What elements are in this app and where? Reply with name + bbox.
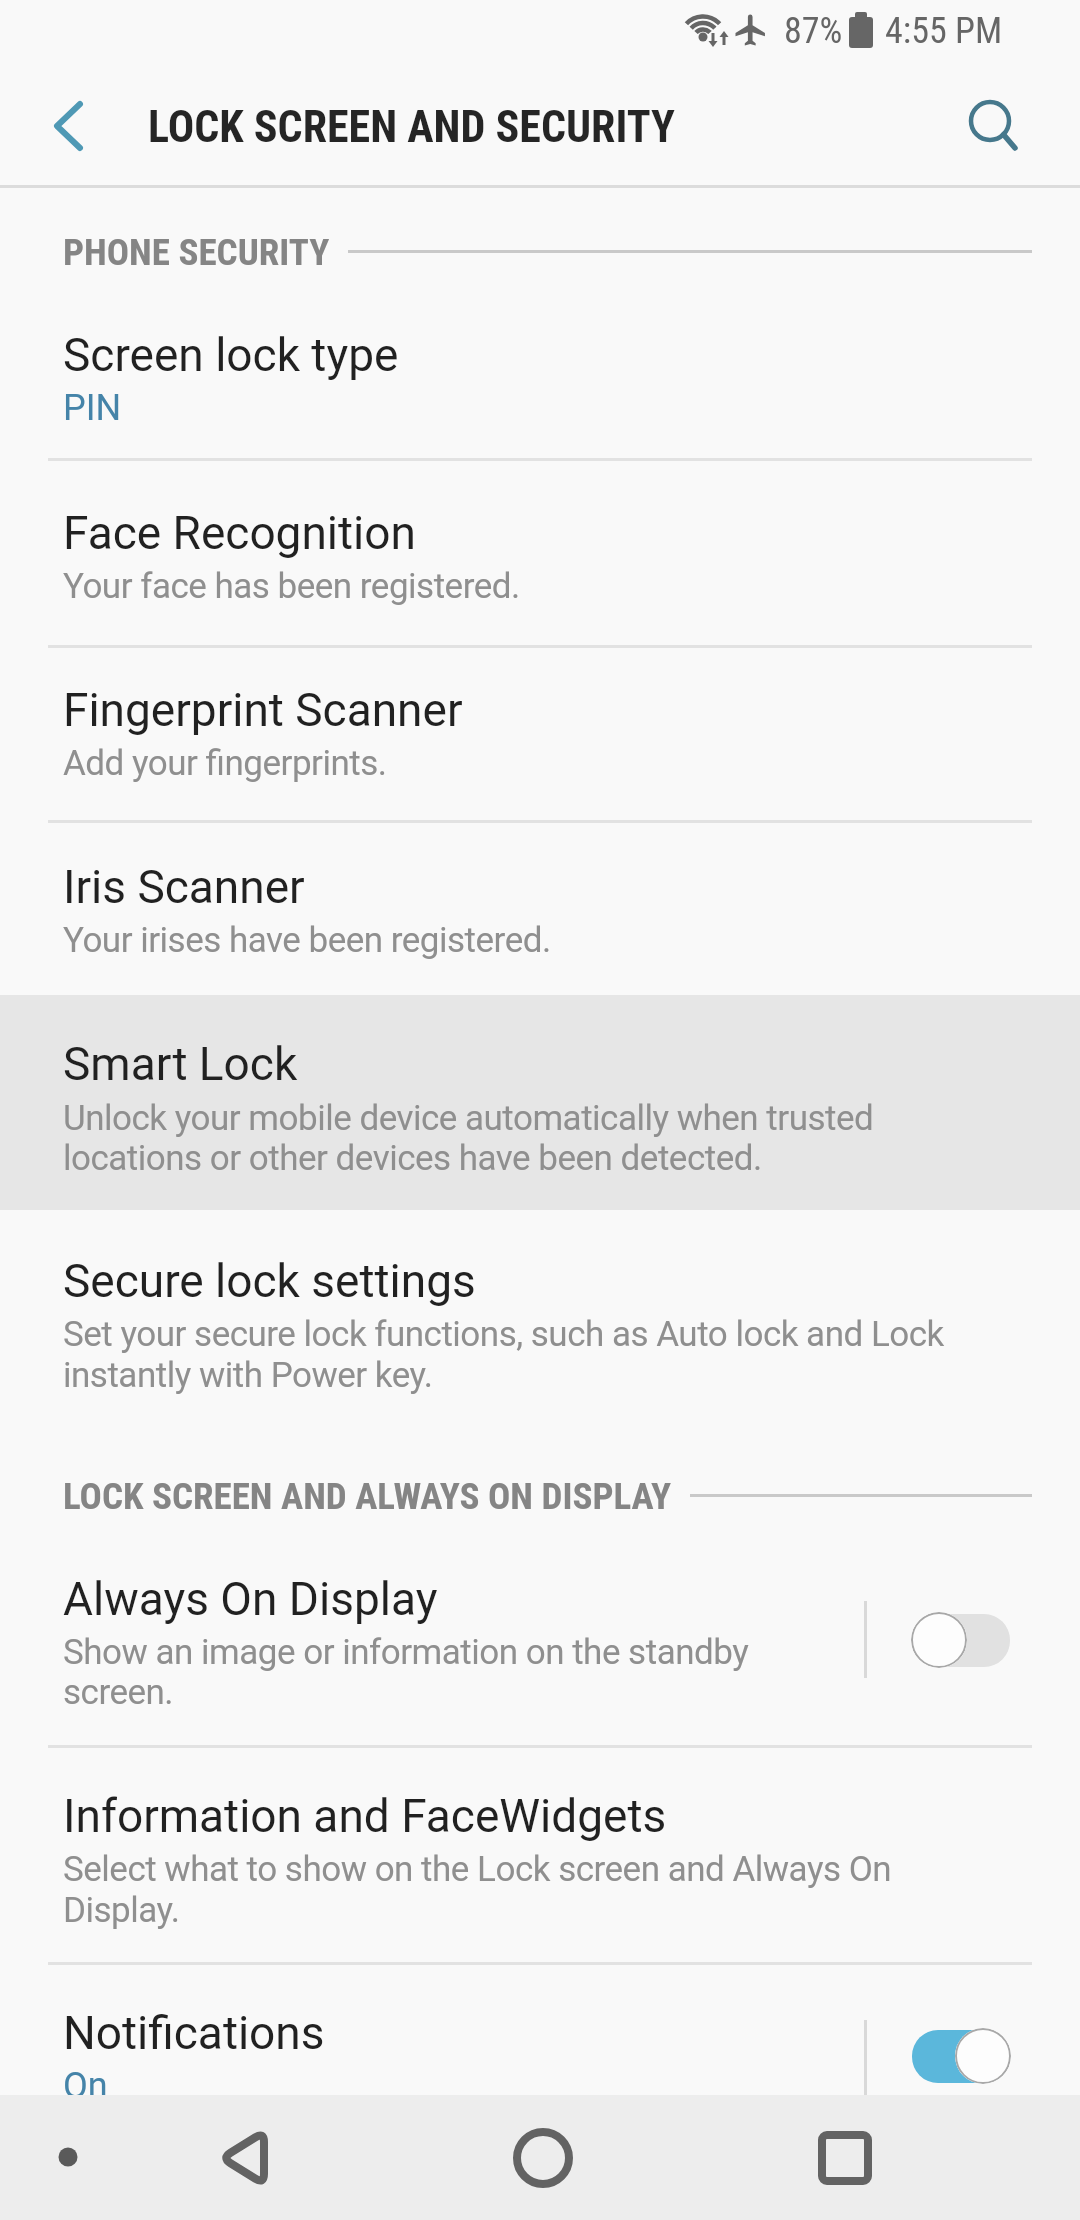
staticText: Set your secure lock functions, such as …	[63, 1314, 944, 1355]
staticText: LOCK SCREEN AND ALWAYS ON DISPLAY	[63, 1475, 672, 1518]
staticText: Select what to show on the Lock screen a…	[63, 1849, 892, 1890]
button[interactable]	[0, 1745, 1080, 1962]
button[interactable]	[180, 2095, 305, 2220]
staticText: 87%	[784, 10, 843, 52]
staticText: Iris Scanner	[63, 860, 305, 914]
staticText: Always On Display	[63, 1572, 438, 1626]
staticText: Display.	[63, 1890, 180, 1931]
staticText: screen.	[63, 1672, 174, 1713]
staticText: Secure lock settings	[63, 1254, 476, 1308]
staticText: Unlock your mobile device automatically …	[63, 1098, 874, 1139]
button[interactable]	[0, 995, 1080, 1210]
staticText: PIN	[63, 387, 122, 429]
button[interactable]	[0, 1210, 1080, 1425]
staticText: Your irises have been registered.	[63, 920, 551, 961]
staticText: LOCK SCREEN AND SECURITY	[148, 101, 675, 153]
staticText: instantly with Power key.	[63, 1355, 433, 1396]
staticText: 4:55 PM	[885, 10, 1003, 52]
staticText: Information and FaceWidgets	[63, 1789, 667, 1843]
button[interactable]	[782, 2095, 907, 2220]
staticText: Face Recognition	[63, 506, 416, 560]
button[interactable]	[480, 2095, 605, 2220]
staticText: Fingerprint Scanner	[63, 683, 463, 737]
staticText: Your face has been registered.	[63, 566, 520, 607]
staticText: Notifications	[63, 2006, 325, 2060]
staticText: On	[63, 2065, 108, 2107]
button[interactable]	[0, 645, 1080, 820]
staticText: Screen lock type	[63, 328, 399, 382]
button[interactable]	[44, 102, 92, 150]
button[interactable]	[962, 93, 1020, 151]
staticText: Show an image or information on the stan…	[63, 1632, 749, 1673]
button[interactable]	[0, 820, 1080, 995]
staticText: Smart Lock	[63, 1037, 298, 1091]
staticText: locations or other devices have been det…	[63, 1138, 762, 1179]
button[interactable]	[912, 1614, 1010, 1667]
button[interactable]	[0, 1962, 1080, 2095]
staticText: Add your fingerprints.	[63, 743, 387, 784]
button[interactable]	[0, 458, 1080, 645]
button[interactable]	[0, 188, 1080, 458]
staticText: PHONE SECURITY	[63, 231, 330, 274]
button[interactable]	[912, 2030, 1010, 2083]
button[interactable]	[0, 1530, 1080, 1745]
